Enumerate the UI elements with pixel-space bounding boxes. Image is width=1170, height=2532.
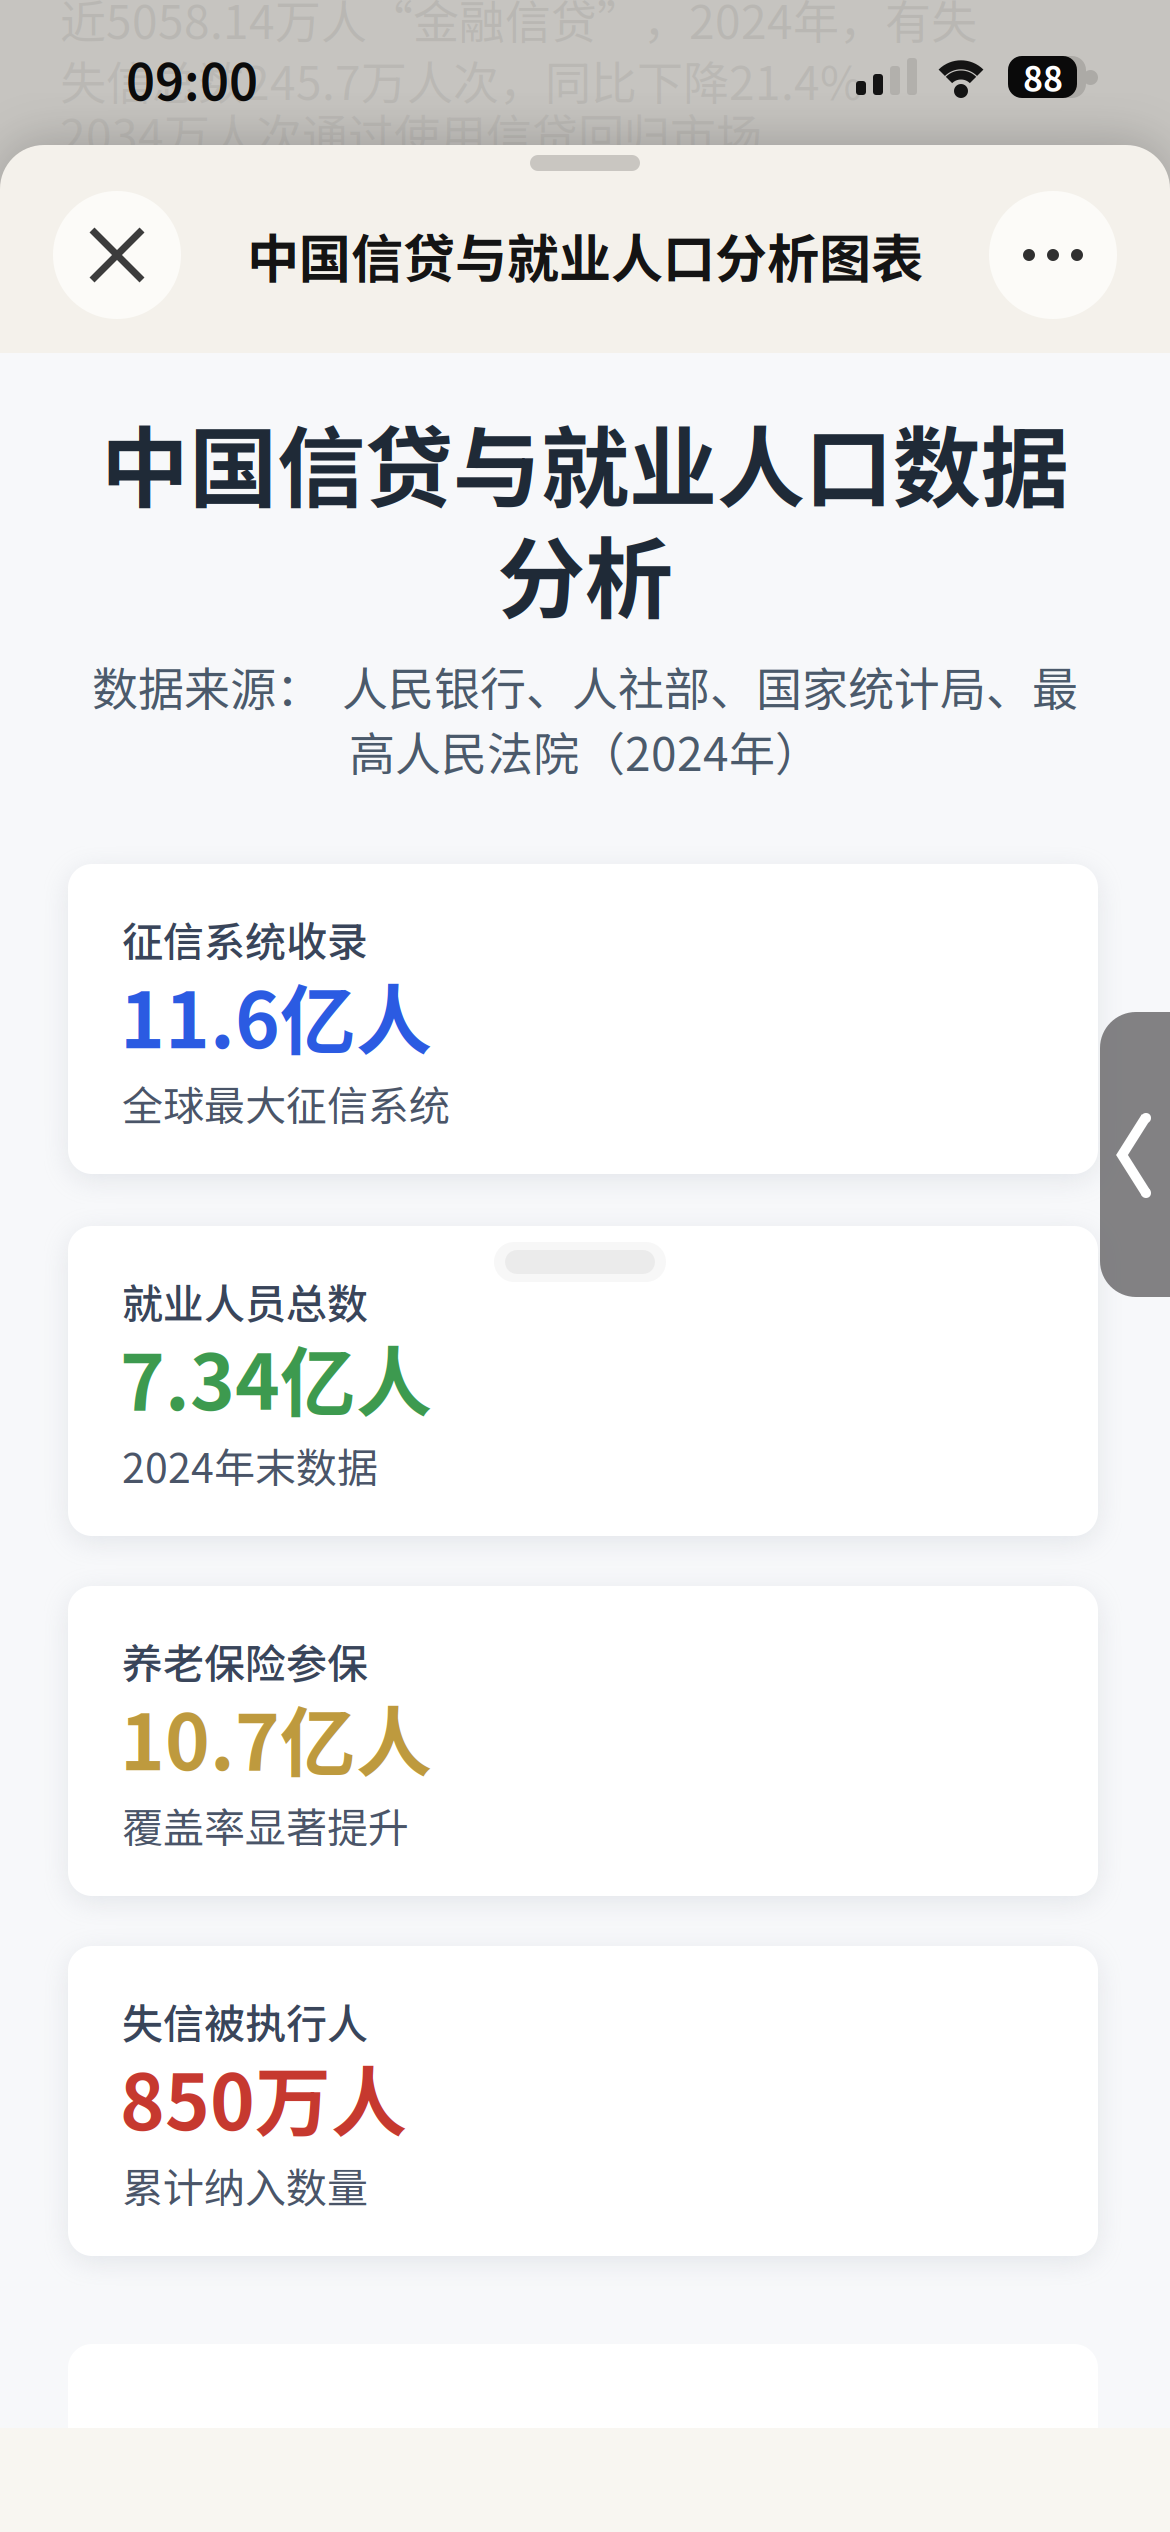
button[interactable] — [53, 191, 181, 319]
staticText: 88 — [1023, 52, 1063, 102]
staticText: 中国信贷与就业人口数据 — [101, 398, 1069, 526]
staticText: 分析 — [497, 509, 673, 637]
staticText: 2034万人次通过使用信贷回归市场 — [60, 100, 762, 166]
staticText: 中国信贷与就业人口分析图表 — [247, 217, 923, 293]
staticText: 11.6亿人 — [120, 960, 432, 1070]
staticText: 全球最大征信系统 — [122, 1073, 450, 1133]
staticText: 近5058.14万人“金融信贷”，2024年，有失 — [60, 0, 977, 52]
staticText: 09:00 — [126, 43, 258, 115]
staticText: 覆盖率显著提升 — [122, 1795, 409, 1855]
staticText: 累计纳入数量 — [122, 2155, 368, 2215]
button[interactable] — [989, 191, 1117, 319]
staticText: 10.7亿人 — [120, 1682, 432, 1792]
staticText: 征信系统收录 — [122, 909, 368, 969]
button[interactable] — [1100, 1012, 1170, 1297]
staticText: 850万人 — [120, 2042, 407, 2152]
staticText: 2024年末数据 — [122, 1435, 378, 1495]
staticText: 高人民法院（2024年） — [349, 718, 821, 784]
staticText: 养老保险参保 — [122, 1631, 368, 1691]
staticText: 就业人员总数 — [122, 1271, 368, 1331]
staticText: 数据来源： 人民银行、人社部、国家统计局、最 — [92, 653, 1078, 719]
staticText: 失信总数245.7万人次，同比下降21.4% — [60, 47, 862, 113]
staticText: 失信被执行人 — [122, 1991, 368, 2051]
staticText: 7.34亿人 — [120, 1322, 432, 1432]
